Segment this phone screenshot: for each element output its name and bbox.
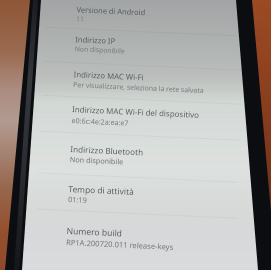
button[interactable]: Indirizzo IP [75, 34, 265, 62]
staticText: Tempo di attività [68, 183, 135, 197]
staticText: Indirizzo Bluetooth [70, 143, 143, 157]
staticText: Non disponibile [70, 154, 124, 166]
button[interactable]: Numero build [66, 225, 257, 256]
button[interactable]: Indirizzo MAC Wi-Fi del dispositivo [71, 104, 262, 134]
staticText: 01:19 [68, 194, 87, 205]
staticText: e0:6c:4e:2a:ea:e7 [71, 115, 129, 128]
staticText: RP1A.200720.011 release-keys [66, 237, 174, 252]
staticText: Non disponibile [75, 44, 125, 55]
staticText: Indirizzo IP [75, 34, 115, 46]
staticText: Per visualizzare, seleziona la rete salv… [73, 80, 204, 95]
button[interactable]: Indirizzo MAC Wi-Fi [73, 69, 264, 98]
staticText: Indirizzo MAC Wi-Fi [73, 69, 144, 83]
button[interactable]: Versione di Android [76, 4, 267, 32]
staticText: Versione di Android [76, 4, 146, 17]
button[interactable]: Indirizzo Bluetooth [70, 143, 260, 173]
button[interactable]: Tempo di attività [68, 183, 259, 213]
staticText: 11 [76, 14, 84, 24]
staticText: Numero build [66, 225, 123, 239]
staticText: Indirizzo MAC Wi-Fi del dispositivo [72, 104, 200, 121]
